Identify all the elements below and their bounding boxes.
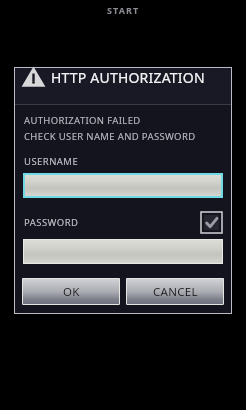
staticText: PASSWORD bbox=[24, 216, 79, 229]
staticText: HTTP AUTHORIZATION bbox=[51, 68, 205, 87]
staticText: CANCEL bbox=[153, 284, 198, 300]
staticText: CHECK USER NAME AND PASSWORD bbox=[24, 130, 196, 143]
button[interactable] bbox=[25, 175, 221, 196]
button[interactable]: CANCEL bbox=[126, 278, 224, 305]
staticText: START bbox=[107, 4, 140, 16]
button[interactable] bbox=[24, 240, 222, 263]
button[interactable]: OK bbox=[22, 278, 120, 305]
staticText: OK bbox=[63, 284, 80, 300]
staticText: AUTHORIZATION FAILED bbox=[24, 114, 141, 127]
staticText: USERNAME bbox=[24, 155, 79, 168]
button[interactable]: Show password bbox=[201, 212, 222, 233]
other: Warning bbox=[23, 67, 44, 88]
